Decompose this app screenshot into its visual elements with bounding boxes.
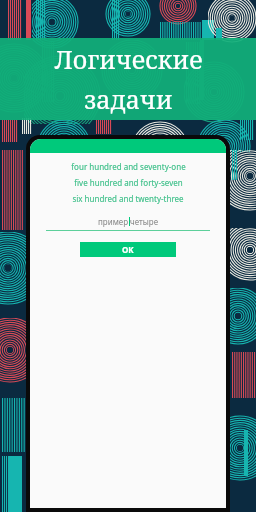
staticText: Логические [54,42,203,76]
staticText: OK [122,244,134,255]
button[interactable]: пример [46,216,210,231]
staticText: пример [98,216,129,227]
button[interactable]: OK [80,242,176,257]
staticText: four hundred and seventy-one [71,161,186,172]
staticText: четыре [130,216,159,227]
staticText: five hundred and forty-seven [74,177,183,188]
staticText: задачи [84,82,173,116]
staticText: six hundred and twenty-three [72,193,184,204]
